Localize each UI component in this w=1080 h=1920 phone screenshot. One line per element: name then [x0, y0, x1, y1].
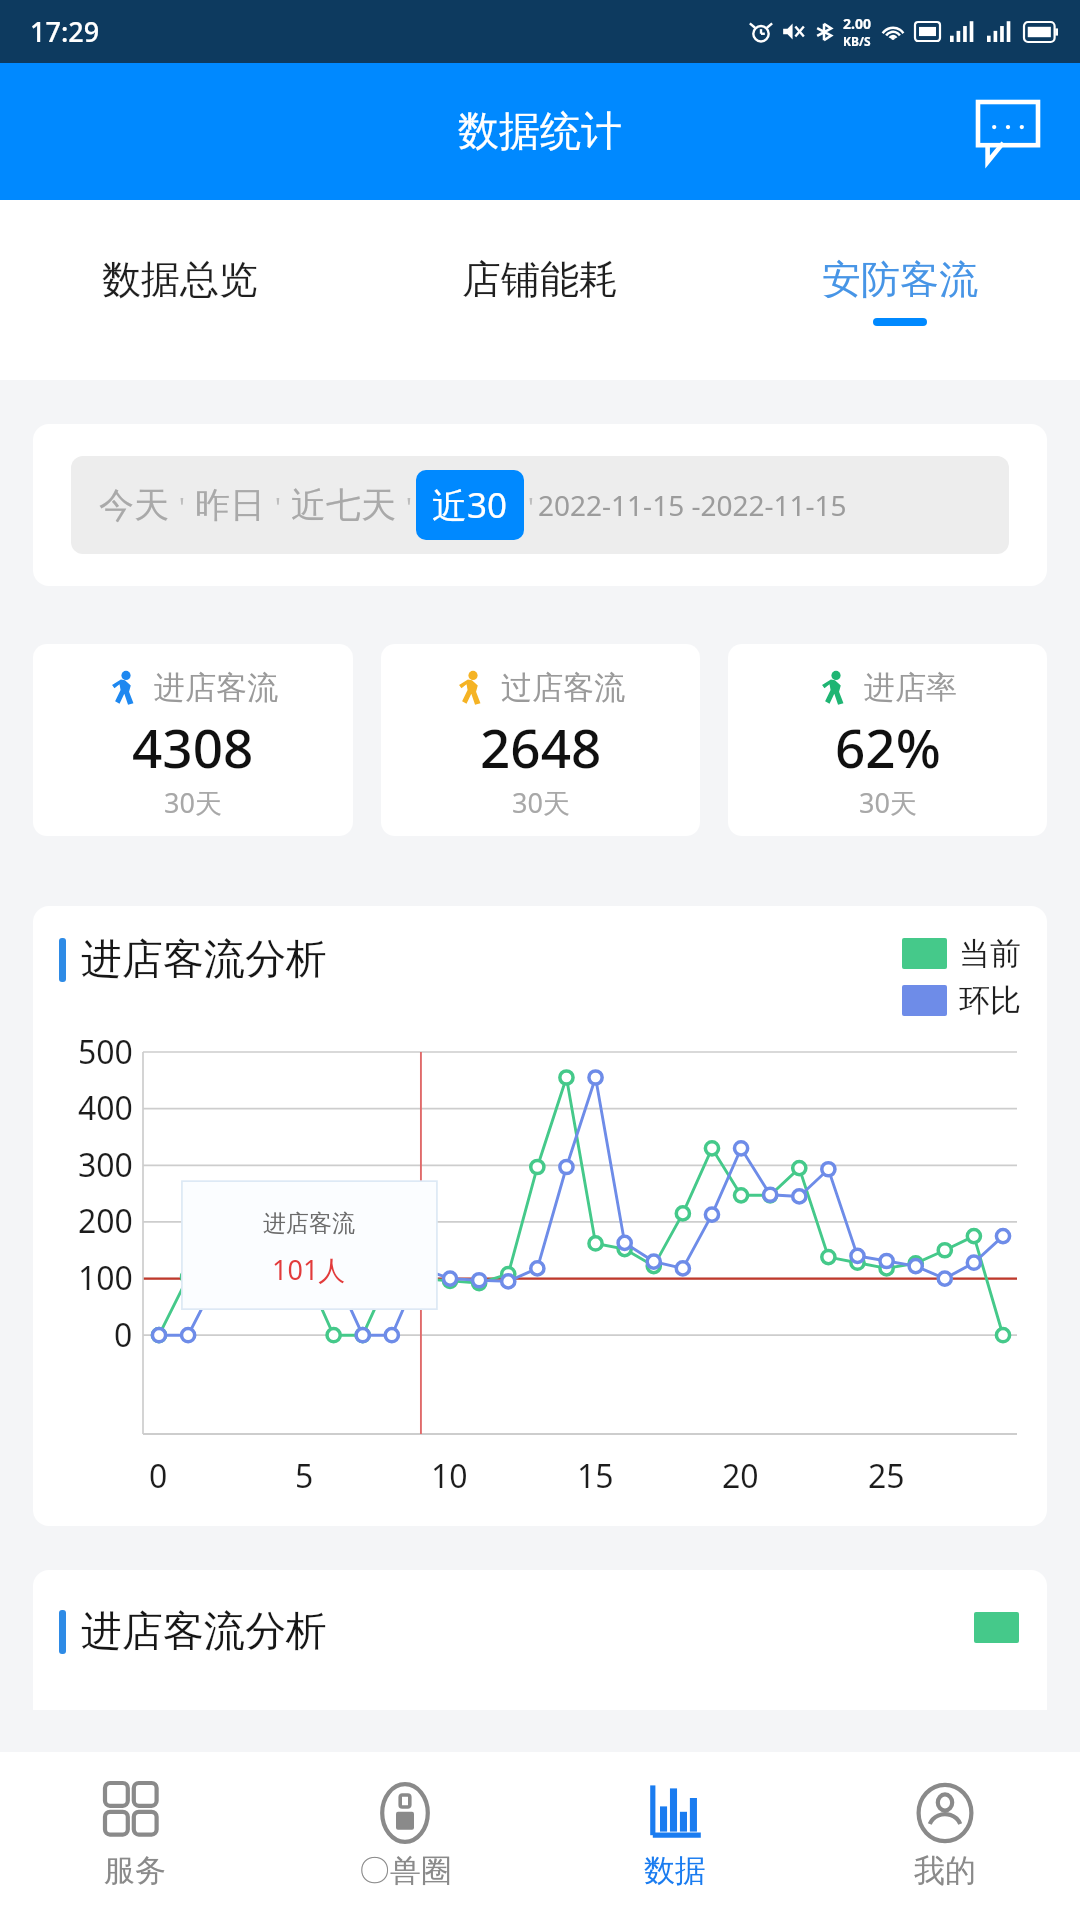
staticText: 200: [78, 1199, 133, 1243]
button[interactable]: 过店客流: [381, 644, 700, 836]
button[interactable]: 当前: [902, 934, 1021, 973]
staticText: ': [406, 488, 412, 523]
staticText: 安防客流: [822, 255, 978, 304]
button[interactable]: 进店客流: [33, 644, 353, 836]
staticText: 进店率: [864, 668, 957, 707]
button[interactable]: 进店率: [728, 644, 1047, 836]
staticText: 0: [149, 1454, 168, 1498]
staticText: 进店客流分析: [81, 934, 327, 986]
staticText: 10: [431, 1454, 468, 1498]
staticText: 20: [722, 1454, 759, 1498]
button[interactable]: 近七天: [285, 475, 402, 535]
button[interactable]: 今天: [93, 475, 175, 535]
staticText: 400: [78, 1086, 133, 1130]
staticText: 17:29: [30, 13, 100, 50]
staticText: 店铺能耗: [462, 255, 618, 304]
button[interactable]: 数据: [540, 1752, 810, 1920]
button[interactable]: 近30: [416, 470, 524, 540]
button[interactable]: 消息: [972, 96, 1044, 168]
staticText: 15: [577, 1454, 614, 1498]
staticText: 25: [868, 1454, 905, 1498]
button[interactable]: 安防客流: [720, 200, 1080, 380]
staticText: 数据: [644, 1851, 706, 1890]
staticText: 0: [114, 1313, 133, 1357]
button[interactable]: 店铺能耗: [360, 200, 720, 380]
staticText: KB/S: [843, 33, 871, 49]
button[interactable]: 2022-11-15 -2022-11-15: [538, 486, 847, 524]
staticText: 2648: [480, 711, 602, 783]
staticText: 100: [78, 1256, 133, 1300]
staticText: 30天: [164, 784, 222, 821]
staticText: 环比: [959, 981, 1021, 1020]
staticText: 5: [295, 1454, 314, 1498]
button[interactable]: 〇兽圈: [270, 1752, 540, 1920]
staticText: 近七天: [291, 483, 396, 527]
staticText: 数据统计: [458, 106, 622, 158]
staticText: 昨日: [195, 483, 265, 527]
staticText: ': [179, 488, 185, 523]
staticText: 进店客流: [263, 1209, 355, 1238]
staticText: 进店客流分析: [81, 1606, 327, 1658]
staticText: 62%: [835, 711, 941, 783]
staticText: 4308: [132, 711, 254, 783]
staticText: 500: [78, 1030, 133, 1074]
staticText: 2.00: [843, 14, 871, 33]
button[interactable]: 昨日: [189, 475, 271, 535]
staticText: 30天: [859, 784, 917, 821]
staticText: 300: [78, 1143, 133, 1187]
staticText: ': [275, 488, 281, 523]
staticText: 〇兽圈: [359, 1851, 452, 1890]
button[interactable]: 服务: [0, 1752, 270, 1920]
staticText: 我的: [914, 1851, 976, 1890]
button[interactable]: 环比: [902, 981, 1021, 1020]
button[interactable]: 数据总览: [0, 200, 360, 380]
staticText: 过店客流: [501, 668, 625, 707]
staticText: 服务: [104, 1851, 166, 1890]
staticText: 当前: [959, 934, 1021, 973]
staticText: 进店客流: [154, 668, 278, 707]
staticText: 101人: [272, 1251, 346, 1288]
button[interactable]: 我的: [810, 1752, 1080, 1920]
staticText: 近30: [432, 481, 508, 529]
staticText: 今天: [99, 483, 169, 527]
staticText: 30天: [512, 784, 570, 821]
staticText: ': [528, 488, 534, 523]
staticText: 数据总览: [102, 255, 258, 304]
